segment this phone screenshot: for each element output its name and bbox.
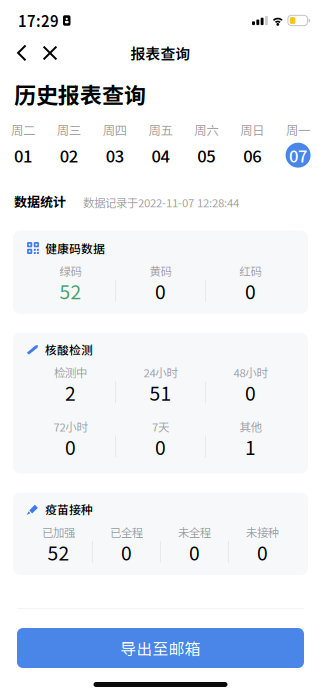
staticText: 未接种 (246, 524, 279, 540)
staticText: 历史报表查询 (14, 78, 146, 110)
staticText: 07 (289, 143, 307, 167)
button[interactable]: 导出至邮箱 (17, 628, 304, 668)
staticText: 周一 (286, 121, 310, 139)
staticText: 24小时 (143, 364, 177, 380)
staticText: 72小时 (53, 418, 87, 435)
staticText: 04 (151, 143, 169, 167)
staticText: 0 (189, 538, 200, 566)
staticText: 其他 (239, 418, 261, 435)
staticText: 周六 (194, 121, 218, 139)
staticText: 51 (149, 378, 171, 406)
staticText: 检测中 (54, 364, 87, 380)
staticText: 已加强 (42, 524, 75, 540)
staticText: 0 (65, 433, 76, 461)
staticText: 报表查询 (130, 42, 190, 64)
staticText: 黄码 (149, 263, 171, 279)
staticText: 52 (47, 538, 69, 566)
button[interactable]: 周一 (275, 121, 321, 168)
staticText: 52 (59, 277, 81, 305)
staticText: 0 (155, 433, 166, 461)
staticText: 2 (65, 378, 76, 406)
staticText: 导出至邮箱 (120, 637, 200, 659)
button[interactable]: 周六 (183, 121, 229, 168)
staticText: 03 (106, 143, 124, 167)
staticText: 健康码数据 (45, 239, 105, 257)
staticText: 0 (257, 538, 268, 566)
staticText: 数据统计 (14, 192, 66, 210)
staticText: 疫苗接种 (45, 501, 93, 518)
staticText: 红码 (239, 263, 261, 279)
button[interactable]: 周日 (229, 121, 275, 168)
staticText: 05 (197, 143, 215, 167)
button[interactable]: Back (8, 37, 36, 69)
button[interactable]: 周五 (138, 121, 183, 168)
staticText: 未全程 (178, 524, 211, 540)
staticText: 绿码 (59, 263, 81, 279)
staticText: 0 (155, 277, 166, 305)
button[interactable]: 周三 (46, 121, 92, 168)
staticText: 周二 (11, 121, 35, 139)
staticText: 周四 (103, 121, 127, 139)
button[interactable]: 周二 (0, 121, 46, 168)
staticText: 17:29 (18, 10, 59, 31)
staticText: 核酸检测 (45, 341, 93, 358)
staticText: 0 (245, 378, 256, 406)
staticText: 0 (121, 538, 132, 566)
staticText: 周日 (240, 121, 264, 139)
staticText: 已全程 (110, 524, 143, 540)
staticText: 数据记录于2022-11-07 12:28:44 (83, 194, 239, 210)
staticText: 0 (245, 277, 256, 305)
staticText: 周三 (57, 121, 81, 139)
staticText: 01 (14, 143, 32, 167)
staticText: 1 (245, 433, 256, 461)
button[interactable]: 周四 (92, 121, 138, 168)
staticText: 7天 (152, 418, 169, 435)
staticText: 02 (60, 143, 78, 167)
button[interactable]: Close (36, 37, 64, 69)
staticText: 48小时 (233, 364, 267, 380)
staticText: 周五 (148, 121, 172, 139)
staticText: 06 (243, 143, 261, 167)
